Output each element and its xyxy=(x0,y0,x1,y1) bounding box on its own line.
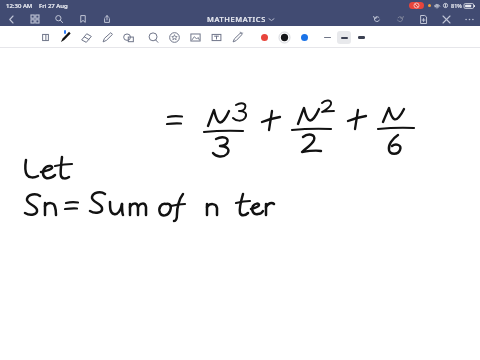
button[interactable]: Medium stroke selected xyxy=(337,31,351,44)
staticText: MATHEMATICS xyxy=(207,14,266,24)
button[interactable]: Search xyxy=(52,12,66,26)
button[interactable]: Eraser xyxy=(79,30,94,45)
button[interactable]: More options xyxy=(462,12,476,26)
button[interactable]: Text box xyxy=(209,30,224,45)
button[interactable]: Redo xyxy=(393,12,407,26)
button[interactable]: Sticker xyxy=(167,30,182,45)
button[interactable]: Thick stroke xyxy=(354,31,368,44)
button[interactable]: Black selected xyxy=(277,30,292,45)
button[interactable]: Pen xyxy=(57,29,73,45)
button[interactable]: Lasso select xyxy=(121,30,136,45)
button[interactable]: MATHEMATICS xyxy=(204,13,277,25)
button[interactable]: Highlighter xyxy=(100,30,115,45)
button[interactable]: Add page xyxy=(416,12,430,26)
button[interactable]: Shapes xyxy=(146,30,161,45)
button[interactable]: Laser pointer xyxy=(230,30,245,45)
button[interactable]: Thin stroke xyxy=(320,31,334,44)
button[interactable]: Bookmark xyxy=(76,12,90,26)
button[interactable]: Undo xyxy=(370,12,384,26)
button[interactable]: Back xyxy=(4,12,18,26)
staticText: 81% xyxy=(451,2,462,9)
button[interactable]: Close xyxy=(439,12,453,26)
button[interactable]: Blue xyxy=(297,30,312,45)
staticText: 12:30 AM xyxy=(6,2,33,10)
button[interactable]: Pages xyxy=(28,12,42,26)
button[interactable]: Page layout xyxy=(38,30,53,45)
button[interactable]: Share xyxy=(100,12,114,26)
button[interactable]: Insert image xyxy=(188,30,203,45)
button[interactable]: Red xyxy=(257,30,272,45)
staticText: Fri 27 Aug xyxy=(39,2,68,10)
